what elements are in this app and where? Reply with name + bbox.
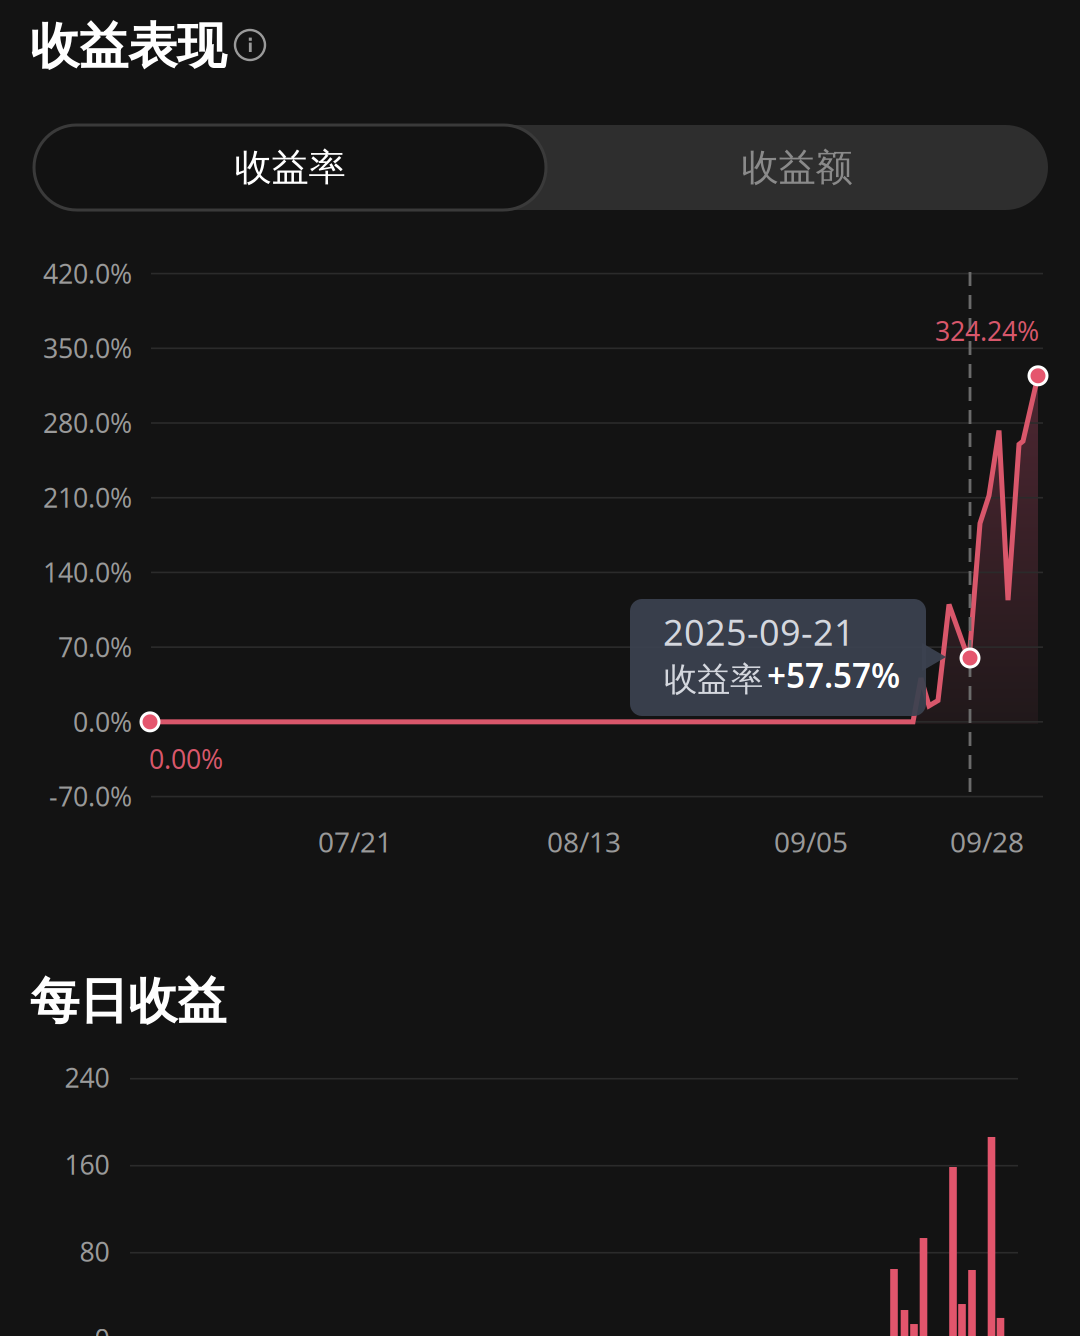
- button[interactable]: 收益率: [34, 125, 546, 210]
- button[interactable]: 收益表现说明: [234, 29, 266, 61]
- staticText: 0: [94, 1321, 109, 1336]
- staticText: 收益表现: [30, 16, 226, 77]
- staticText: 每日收益: [30, 971, 226, 1032]
- staticText: 324.24%: [935, 313, 1039, 348]
- staticText: 09/28: [950, 823, 1024, 860]
- staticText: +57.57%: [767, 653, 900, 697]
- staticText: -70.0%: [49, 779, 132, 814]
- staticText: 收益额: [741, 145, 852, 190]
- staticText: 70.0%: [58, 629, 132, 664]
- staticText: 0.00%: [149, 741, 223, 776]
- staticText: 2025-09-21: [663, 608, 855, 656]
- staticText: 0.0%: [73, 704, 132, 739]
- button[interactable]: 收益额: [546, 125, 1048, 210]
- staticText: 350.0%: [43, 330, 132, 366]
- staticText: 160: [64, 1147, 109, 1182]
- staticText: 07/21: [318, 823, 392, 860]
- staticText: 80: [79, 1234, 109, 1269]
- staticText: 140.0%: [43, 554, 132, 590]
- staticText: 收益率: [664, 659, 763, 700]
- staticText: 09/05: [774, 823, 848, 860]
- staticText: 420.0%: [43, 256, 132, 291]
- staticText: 210.0%: [43, 480, 132, 515]
- staticText: 收益率: [234, 145, 345, 190]
- staticText: 08/13: [547, 823, 621, 860]
- staticText: 280.0%: [43, 405, 132, 440]
- staticText: 240: [64, 1060, 109, 1095]
